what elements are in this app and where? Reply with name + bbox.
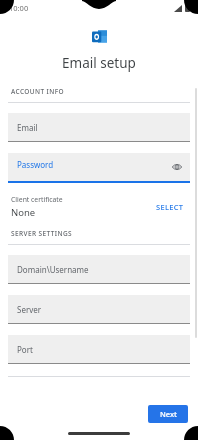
staticText: Password [17,159,54,170]
staticText: ACCOUNT INFO [11,87,65,96]
button[interactable]: Show password [171,161,183,173]
button[interactable]: Client certificate [11,195,187,219]
staticText: 10:00 [9,3,29,13]
staticText: Domain\Username [17,264,89,275]
staticText: Email setup [0,54,198,72]
button[interactable]: Port [8,335,190,364]
button[interactable]: Password [8,153,190,183]
staticText: Server [17,304,42,315]
staticText: Email [17,122,38,133]
button[interactable]: Email [8,113,190,142]
staticText: Port [17,344,33,355]
button[interactable]: Next [148,405,188,423]
button[interactable]: Domain\Username [8,255,190,284]
staticText: Client certificate [11,195,63,204]
staticText: None [11,206,36,219]
button[interactable]: SELECT [153,199,187,215]
staticText: SERVER SETTINGS [11,229,72,238]
staticText: Next [160,409,177,419]
button[interactable]: Server [8,295,190,324]
staticText: SELECT [156,202,184,212]
